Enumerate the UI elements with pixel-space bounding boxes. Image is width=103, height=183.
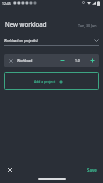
staticText: Add a project xyxy=(34,79,56,84)
staticText: 12:45 xyxy=(2,1,11,6)
staticText: 1.0 xyxy=(75,58,80,63)
staticText: Tue, 30 Jun xyxy=(78,23,97,28)
button[interactable]: Remove project xyxy=(4,54,99,67)
button[interactable]: Remove project xyxy=(4,54,17,67)
button[interactable]: Close xyxy=(4,164,16,176)
button[interactable]: Workload on project(s) xyxy=(4,38,99,46)
button[interactable]: Save xyxy=(85,165,99,175)
staticText: New workload xyxy=(5,20,47,28)
button[interactable]: Add a project xyxy=(4,72,99,90)
staticText: Save xyxy=(87,167,97,173)
staticText: Workload on project(s) xyxy=(4,39,38,43)
button[interactable]: Decrease xyxy=(55,54,69,67)
button[interactable]: Increase xyxy=(87,54,98,67)
staticText: Workload xyxy=(17,58,33,63)
